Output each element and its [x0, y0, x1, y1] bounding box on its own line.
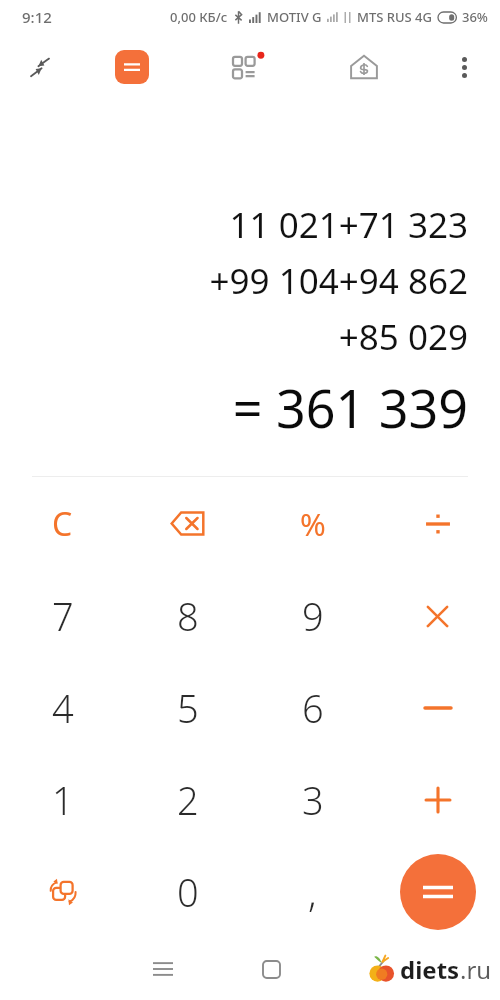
button[interactable]: Mortgage [340, 43, 388, 91]
button[interactable]: Equals [400, 854, 476, 930]
button[interactable]: 4 [0, 662, 125, 754]
button[interactable]: Convert [0, 846, 125, 938]
staticText: 3 [302, 774, 324, 826]
staticText: 7 [52, 590, 74, 642]
button[interactable]: 8 [125, 570, 250, 662]
button[interactable]: Recent apps [108, 938, 217, 1000]
staticText: 4 [52, 682, 74, 734]
staticText: 1 [52, 774, 74, 826]
button[interactable]: Percent [250, 477, 375, 570]
staticText: 0,00 КБ/с [170, 8, 228, 26]
staticText: 11 021+71 323 +99 104+94 862 +85 029 [209, 201, 468, 360]
staticText: 8 [177, 590, 199, 642]
button[interactable]: More options [440, 43, 488, 91]
button[interactable]: 6 [250, 662, 375, 754]
button[interactable]: Collapse [16, 43, 64, 91]
staticText: = 361 339 [232, 372, 468, 443]
button[interactable]: Back [326, 938, 435, 1000]
button[interactable]: Tools [224, 43, 272, 91]
staticText: , [308, 866, 317, 918]
staticText: MTS RUS 4G [357, 8, 432, 26]
staticText: 5 [177, 682, 199, 734]
button[interactable]: Calculator [108, 43, 156, 91]
button[interactable]: Backspace [125, 477, 250, 570]
button[interactable]: 2 [125, 754, 250, 846]
staticText: diets [400, 953, 460, 986]
button[interactable]: Plus [375, 754, 500, 846]
button[interactable]: 0 [125, 846, 250, 938]
button[interactable]: 1 [0, 754, 125, 846]
button[interactable]: Divide [375, 477, 500, 570]
button[interactable]: 5 [125, 662, 250, 754]
staticText: 9:12 [22, 7, 52, 27]
staticText: % [300, 503, 326, 545]
staticText: 9 [302, 590, 324, 642]
staticText: C [52, 502, 73, 546]
button[interactable]: Minus [375, 662, 500, 754]
button[interactable]: 9 [250, 570, 375, 662]
button[interactable]: Clear [0, 477, 125, 570]
button[interactable]: Multiply [375, 570, 500, 662]
button[interactable]: Home [217, 938, 326, 1000]
staticText: 36% [462, 8, 488, 26]
staticText: 2 [177, 774, 199, 826]
staticText: 6 [302, 682, 324, 734]
staticText: .ru [460, 953, 492, 986]
staticText: MOTIV G [267, 8, 322, 26]
button[interactable]: 7 [0, 570, 125, 662]
staticText: 0 [177, 866, 199, 918]
button[interactable]: , [250, 846, 375, 938]
button[interactable]: 3 [250, 754, 375, 846]
